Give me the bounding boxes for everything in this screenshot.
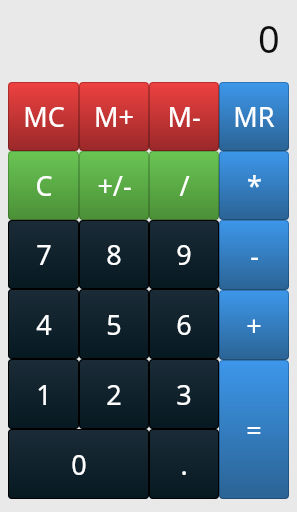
- staticText: 9: [176, 236, 192, 273]
- button[interactable]: 4: [8, 289, 79, 359]
- button[interactable]: 6: [149, 289, 219, 359]
- staticText: 1: [36, 376, 52, 413]
- staticText: .: [180, 446, 188, 483]
- staticText: =: [246, 411, 262, 448]
- staticText: 3: [176, 376, 192, 413]
- button[interactable]: 1: [8, 359, 79, 429]
- staticText: 0: [258, 12, 280, 64]
- staticText: MR: [233, 98, 275, 135]
- staticText: *: [247, 167, 262, 204]
- staticText: MC: [23, 98, 65, 135]
- staticText: 7: [36, 236, 52, 273]
- staticText: M+: [94, 98, 134, 135]
- staticText: /: [179, 167, 190, 204]
- button[interactable]: C: [8, 151, 79, 220]
- button[interactable]: 3: [149, 359, 219, 429]
- button[interactable]: M-: [149, 82, 219, 151]
- staticText: 6: [176, 306, 192, 343]
- button[interactable]: .: [149, 429, 219, 499]
- button[interactable]: MR: [219, 82, 289, 151]
- staticText: 4: [36, 306, 52, 343]
- button[interactable]: =: [219, 360, 289, 499]
- staticText: M-: [167, 98, 201, 135]
- staticText: 5: [106, 306, 122, 343]
- staticText: +/-: [97, 167, 132, 204]
- staticText: C: [35, 167, 53, 204]
- button[interactable]: 7: [8, 220, 79, 289]
- button[interactable]: -: [219, 220, 289, 290]
- button[interactable]: 8: [79, 220, 149, 289]
- button[interactable]: 9: [149, 220, 219, 289]
- staticText: +: [246, 307, 262, 344]
- staticText: 2: [106, 376, 122, 413]
- button[interactable]: +/-: [79, 151, 149, 220]
- staticText: 0: [71, 446, 87, 483]
- button[interactable]: /: [149, 151, 219, 220]
- button[interactable]: MC: [8, 82, 79, 151]
- button[interactable]: 2: [79, 359, 149, 429]
- button[interactable]: M+: [79, 82, 149, 151]
- button[interactable]: 5: [79, 289, 149, 359]
- button[interactable]: +: [219, 290, 289, 360]
- staticText: -: [250, 237, 259, 274]
- staticText: 8: [106, 236, 122, 273]
- button[interactable]: 0: [8, 429, 149, 499]
- button[interactable]: *: [219, 151, 289, 220]
